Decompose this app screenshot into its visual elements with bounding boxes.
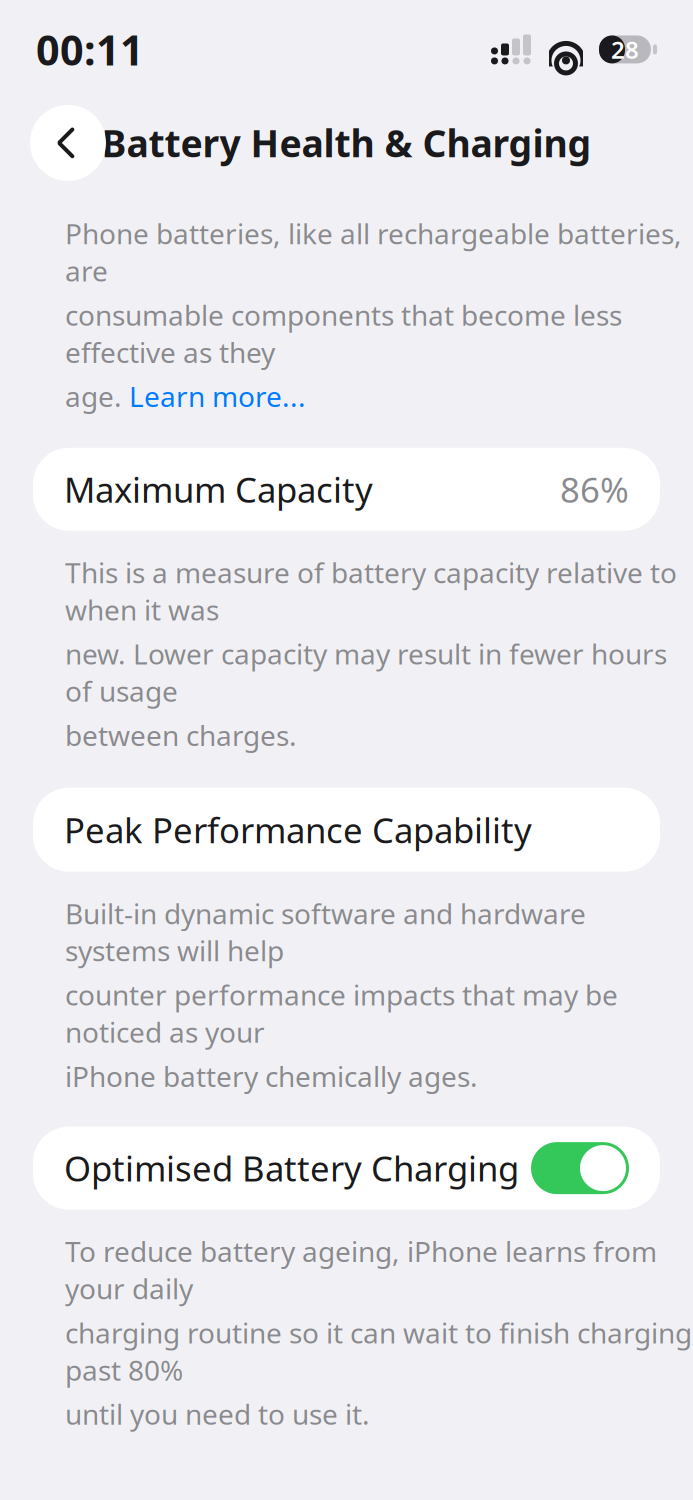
staticText: To reduce battery ageing, iPhone learns …: [65, 1233, 657, 1307]
button[interactable]: Optimised Battery Charging: [33, 1127, 660, 1210]
button[interactable]: Learn more...: [129, 378, 306, 415]
staticText: Learn more...: [129, 378, 306, 415]
staticText: iPhone battery chemically ages.: [65, 1057, 478, 1095]
staticText: Built-in dynamic software and hardware s…: [65, 895, 586, 969]
button[interactable]: Maximum Capacity: [33, 448, 660, 531]
staticText: consumable components that become less e…: [65, 296, 622, 371]
staticText: 28: [611, 33, 639, 65]
staticText: Maximum Capacity: [64, 466, 373, 512]
staticText: until you need to use it.: [65, 1395, 370, 1433]
staticText: charging routine so it can wait to finis…: [65, 1314, 692, 1388]
staticText: 00:11: [36, 22, 144, 77]
staticText: Battery Health & Charging: [101, 118, 591, 168]
button[interactable]: Peak Performance Capability: [33, 788, 660, 872]
staticText: 86%: [560, 466, 629, 512]
staticText: Phone batteries, like all rechargeable b…: [65, 215, 682, 289]
staticText: Peak Performance Capability: [64, 807, 532, 853]
staticText: between charges.: [65, 716, 297, 754]
staticText: Optimised Battery Charging: [64, 1145, 519, 1191]
staticText: new. Lower capacity may result in fewer …: [65, 635, 667, 710]
staticText: This is a measure of battery capacity re…: [65, 554, 677, 628]
staticText: age.: [65, 378, 129, 415]
button[interactable]: Back: [30, 105, 106, 181]
staticText: counter performance impacts that may be …: [65, 976, 618, 1050]
